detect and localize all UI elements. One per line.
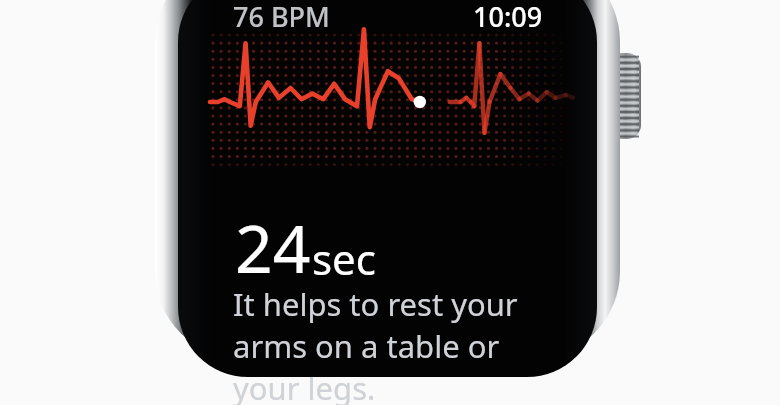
staticText: 10:09 xyxy=(473,0,543,30)
staticText: sec xyxy=(312,230,376,287)
staticText: 76 BPM xyxy=(233,0,330,30)
staticText: 24 xyxy=(235,202,311,292)
staticText: It helps to rest your xyxy=(233,283,518,325)
button[interactable]: ECG waveform xyxy=(210,32,573,172)
staticText: your legs. xyxy=(233,367,376,405)
staticText: arms on a table or xyxy=(233,325,500,367)
button[interactable]: Digital Crown xyxy=(607,53,641,139)
